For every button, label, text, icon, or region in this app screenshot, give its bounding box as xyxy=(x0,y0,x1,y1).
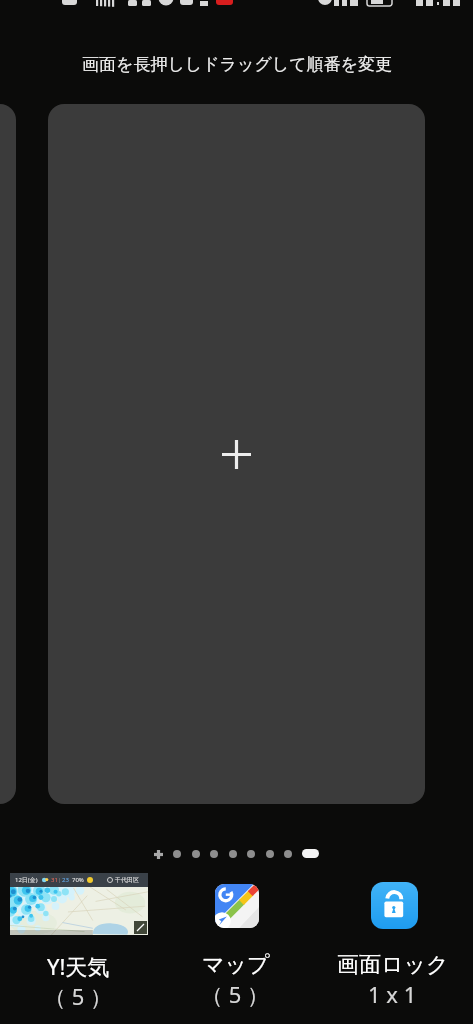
staticText: 画面を長押ししドラッグして順番を変更 xyxy=(82,54,392,75)
staticText: 23 xyxy=(62,876,69,884)
staticText: （ 5 ） xyxy=(44,981,113,1011)
staticText: マップ xyxy=(202,951,270,979)
button[interactable]: Add widget to this page xyxy=(48,104,425,804)
staticText: Y!天気 xyxy=(47,951,110,981)
staticText: 31 xyxy=(51,876,58,884)
button[interactable]: Add page xyxy=(151,847,165,861)
staticText: 千代田区 xyxy=(115,876,139,884)
other: Screen lock xyxy=(371,882,418,929)
staticText: 12日(金) xyxy=(15,876,38,884)
staticText: 70% xyxy=(72,876,84,884)
button[interactable] xyxy=(0,104,16,804)
staticText: （ 5 ） xyxy=(201,979,270,1009)
staticText: 画面ロック xyxy=(337,951,449,979)
other: Maps xyxy=(215,884,262,931)
button[interactable]: Maps xyxy=(157,870,314,1009)
button[interactable]: 12日(金) xyxy=(0,870,157,1011)
button[interactable]: Screen lock xyxy=(314,870,471,1009)
staticText: | xyxy=(58,876,62,884)
staticText: 1 x 1 xyxy=(368,979,417,1009)
